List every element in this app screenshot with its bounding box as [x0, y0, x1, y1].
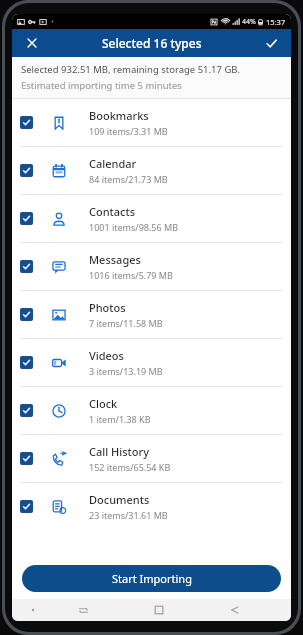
button[interactable]: Assistant [20, 599, 46, 621]
staticText: Messages [89, 252, 141, 267]
staticText: 84 items/21.73 MB [89, 173, 168, 185]
staticText: Bookmarks [89, 108, 149, 123]
staticText: 23 items/31.61 MB [89, 509, 168, 521]
staticText: Contacts [89, 204, 136, 219]
staticText: Start Importing [112, 571, 192, 586]
staticText: Calendar [89, 156, 137, 171]
button[interactable]: Clock [12, 387, 291, 434]
staticText: 3 items/13.19 MB [89, 365, 163, 377]
staticText: Selected 932.51 MB, remaining storage 51… [21, 63, 240, 76]
button[interactable]: Calendar [12, 147, 291, 194]
button[interactable]: Contacts [12, 195, 291, 242]
button[interactable]: Start Importing [22, 565, 281, 592]
button[interactable]: Home [121, 599, 197, 621]
staticText: Selected 16 types [102, 35, 202, 51]
button[interactable]: Documents [12, 483, 291, 530]
staticText: 1 item/1.38 KB [89, 413, 151, 425]
staticText: Videos [89, 348, 124, 363]
button[interactable]: Photos [12, 291, 291, 338]
staticText: 109 items/3.31 MB [89, 125, 168, 137]
staticText: 152 items/65.54 KB [89, 461, 171, 473]
button[interactable]: Call History [12, 435, 291, 482]
button[interactable]: Recents [46, 599, 121, 621]
staticText: Call History [89, 444, 150, 459]
staticText: Clock [89, 396, 118, 411]
staticText: 7 items/11.58 MB [89, 317, 163, 329]
staticText: 44% [242, 17, 256, 27]
staticText: 15:37 [266, 17, 286, 27]
staticText: Estimated importing time 5 minutes [21, 79, 182, 92]
button[interactable]: Videos [12, 339, 291, 386]
button[interactable]: Confirm [251, 29, 291, 57]
staticText: Documents [89, 492, 150, 507]
button[interactable]: Bookmarks [12, 99, 291, 146]
staticText: Photos [89, 300, 126, 315]
staticText: 1016 items/5.79 MB [89, 269, 173, 281]
button[interactable]: Messages [12, 243, 291, 290]
button[interactable]: Back [197, 599, 273, 621]
staticText: 1001 items/98.56 MB [89, 221, 179, 233]
button[interactable]: Close [12, 29, 52, 57]
